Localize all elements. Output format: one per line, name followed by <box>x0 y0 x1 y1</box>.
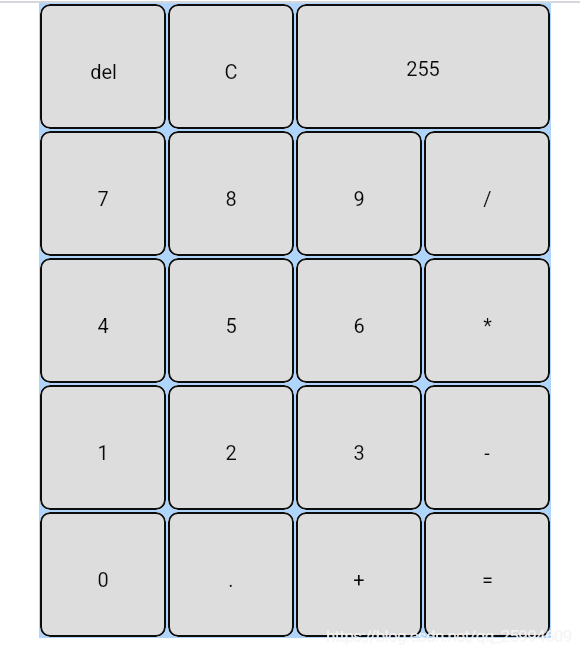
button[interactable]: . <box>168 512 294 637</box>
button[interactable]: - <box>424 385 550 510</box>
staticText: * <box>483 314 492 337</box>
staticText: / <box>483 187 492 210</box>
staticText: 5 <box>225 314 237 337</box>
button[interactable]: 8 <box>168 131 294 256</box>
button[interactable]: 4 <box>40 258 166 383</box>
staticText: del <box>90 60 117 83</box>
button[interactable]: 2 <box>168 385 294 510</box>
staticText: 255 <box>406 57 440 80</box>
staticText: C <box>224 60 238 83</box>
staticText: 4 <box>97 314 109 337</box>
button[interactable]: / <box>424 131 550 256</box>
staticText: https://blog.csdn.net/qq_25994609 <box>326 626 572 646</box>
staticText: 3 <box>353 441 365 464</box>
button[interactable]: * <box>424 258 550 383</box>
staticText: 2 <box>225 441 237 464</box>
button[interactable]: = <box>424 512 550 637</box>
button[interactable]: + <box>296 512 422 637</box>
button[interactable]: del <box>40 4 166 129</box>
staticText: = <box>482 568 493 591</box>
button[interactable]: 0 <box>40 512 166 637</box>
button[interactable]: 7 <box>40 131 166 256</box>
staticText: 7 <box>97 187 109 210</box>
button[interactable]: 5 <box>168 258 294 383</box>
button[interactable]: 9 <box>296 131 422 256</box>
staticText: 8 <box>225 187 237 210</box>
button[interactable]: 1 <box>40 385 166 510</box>
staticText: + <box>353 568 365 591</box>
staticText: 0 <box>97 568 109 591</box>
staticText: . <box>228 568 234 591</box>
button[interactable]: 255 <box>296 4 550 129</box>
button[interactable]: C <box>168 4 294 129</box>
button[interactable]: 3 <box>296 385 422 510</box>
staticText: 9 <box>353 187 365 210</box>
button[interactable]: 6 <box>296 258 422 383</box>
staticText: 6 <box>353 314 365 337</box>
staticText: - <box>484 441 490 464</box>
staticText: 1 <box>97 441 109 464</box>
